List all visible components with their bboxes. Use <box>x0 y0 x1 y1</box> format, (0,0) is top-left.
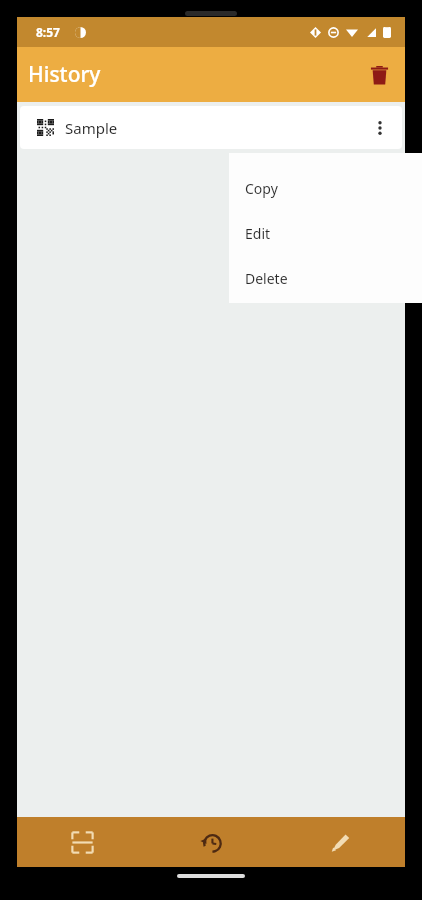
button[interactable]: Edit <box>229 211 422 256</box>
button[interactable]: History <box>147 817 276 867</box>
staticText: Copy <box>245 179 278 198</box>
button[interactable]: Delete <box>229 256 422 301</box>
button[interactable]: Sample <box>20 106 402 149</box>
staticText: History <box>28 60 101 89</box>
staticText: 8:57 <box>36 24 60 40</box>
staticText: Edit <box>245 224 271 243</box>
button[interactable]: Create <box>276 817 405 867</box>
button[interactable]: More options <box>362 110 398 146</box>
button[interactable]: Scan <box>17 817 147 867</box>
staticText: Delete <box>245 269 288 288</box>
button[interactable]: Delete all history <box>357 53 401 97</box>
button[interactable]: Copy <box>229 166 422 211</box>
staticText: Sample <box>65 118 118 138</box>
